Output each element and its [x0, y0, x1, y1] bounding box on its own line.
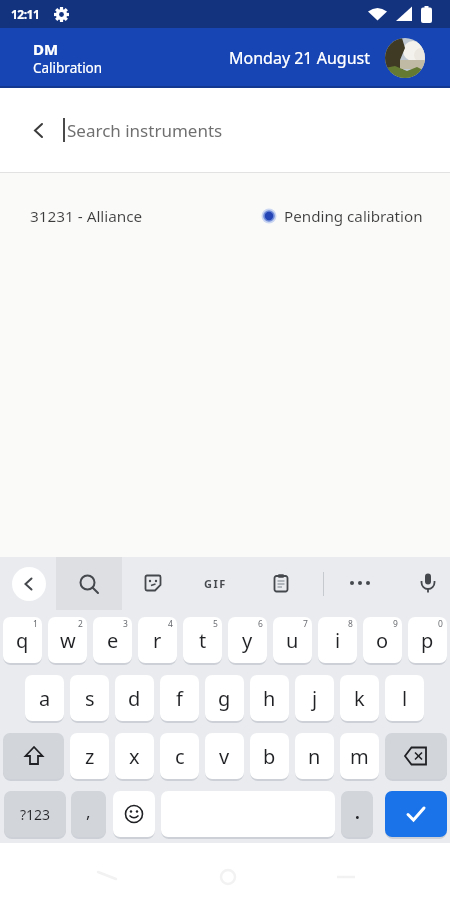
staticText: x	[129, 743, 140, 770]
staticText: 2	[78, 618, 83, 630]
button[interactable]: 31231 - Alliance	[0, 173, 450, 259]
staticText: a	[39, 685, 51, 712]
staticText: i	[335, 627, 341, 654]
staticText: Calibration	[33, 59, 103, 77]
staticText: 0	[438, 618, 443, 630]
button[interactable]: o	[363, 617, 402, 663]
button[interactable]: s	[70, 675, 109, 721]
button[interactable]: l	[385, 675, 424, 721]
staticText: Search instruments	[67, 119, 223, 142]
staticText: b	[263, 743, 276, 770]
staticText: ,	[86, 800, 91, 823]
button[interactable]: b	[250, 733, 289, 779]
button[interactable]: .	[341, 791, 373, 837]
button[interactable]: t	[183, 617, 222, 663]
button[interactable]: v	[205, 733, 244, 779]
staticText: Monday 21 August	[229, 47, 370, 69]
button[interactable]: x	[115, 733, 154, 779]
staticText: d	[128, 685, 141, 712]
staticText: 31231 - Alliance	[30, 206, 143, 227]
staticText: t	[199, 627, 207, 654]
staticText: c	[175, 743, 185, 770]
button[interactable]	[385, 733, 447, 779]
staticText: e	[107, 627, 119, 654]
button[interactable]: u	[273, 617, 312, 663]
button[interactable]	[414, 569, 442, 597]
staticText: GIF	[204, 576, 227, 591]
staticText: l	[402, 685, 408, 712]
staticText: y	[242, 627, 253, 654]
button[interactable]: GIF	[195, 571, 235, 595]
staticText: 1	[33, 618, 38, 630]
staticText: q	[16, 627, 29, 654]
button[interactable]	[139, 569, 167, 597]
staticText: f	[176, 685, 183, 712]
button[interactable]: n	[295, 733, 334, 779]
staticText: u	[286, 627, 299, 654]
staticText: ?123	[20, 805, 51, 824]
button[interactable]: j	[295, 675, 334, 721]
staticText: n	[308, 743, 321, 770]
staticText: 7	[303, 618, 308, 630]
button[interactable]: m	[340, 733, 379, 779]
button[interactable]: a	[25, 675, 64, 721]
staticText: h	[263, 685, 276, 712]
button[interactable]: i	[318, 617, 357, 663]
staticText: 5	[213, 618, 218, 630]
button[interactable]: e	[93, 617, 132, 663]
staticText: j	[312, 685, 318, 712]
button[interactable]: w	[48, 617, 87, 663]
staticText: .	[355, 801, 360, 824]
button[interactable]: c	[160, 733, 199, 779]
button[interactable]	[56, 557, 122, 610]
staticText: g	[218, 685, 231, 712]
staticText: s	[85, 685, 95, 712]
button[interactable]	[3, 733, 64, 779]
staticText: v	[219, 743, 230, 770]
button[interactable]: y	[228, 617, 267, 663]
button[interactable]: f	[160, 675, 199, 721]
staticText: p	[421, 627, 434, 654]
button[interactable]: ?123	[4, 791, 66, 837]
staticText: w	[60, 627, 76, 654]
button[interactable]: k	[340, 675, 379, 721]
staticText: 8	[348, 618, 353, 630]
staticText: r	[153, 627, 162, 654]
staticText: 6	[258, 618, 263, 630]
button[interactable]	[267, 569, 295, 597]
button[interactable]: d	[115, 675, 154, 721]
button[interactable]: Search instruments	[0, 88, 450, 172]
staticText: DM	[33, 39, 59, 59]
staticText: k	[354, 685, 365, 712]
staticText: o	[376, 627, 389, 654]
button[interactable]: p	[408, 617, 447, 663]
button[interactable]	[344, 569, 376, 597]
staticText: 3	[123, 618, 128, 630]
button[interactable]: ,	[71, 791, 106, 837]
button[interactable]	[385, 791, 447, 837]
staticText: 4	[168, 618, 173, 630]
button[interactable]	[113, 791, 155, 837]
button[interactable]: r	[138, 617, 177, 663]
staticText: z	[85, 743, 95, 770]
staticText: m	[350, 743, 369, 770]
button[interactable]: h	[250, 675, 289, 721]
staticText: Pending calibration	[284, 206, 423, 227]
button[interactable]: z	[70, 733, 109, 779]
button[interactable]: g	[205, 675, 244, 721]
staticText: 12:11	[11, 6, 40, 22]
staticText: 9	[393, 618, 398, 630]
button[interactable]	[385, 38, 425, 78]
button[interactable]: q	[3, 617, 42, 663]
button[interactable]	[12, 567, 46, 601]
